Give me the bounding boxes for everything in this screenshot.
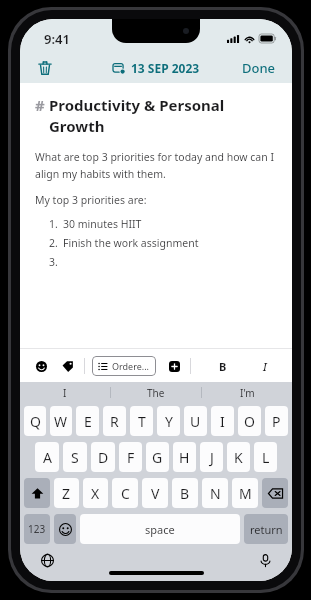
staticText: # [35, 95, 49, 115]
staticText: E [84, 412, 92, 431]
button[interactable]: H [173, 442, 196, 472]
staticText: T [138, 412, 146, 431]
button[interactable]: Backspace [262, 478, 288, 508]
button[interactable]: Dictate [254, 549, 276, 571]
button[interactable]: Q [24, 406, 46, 436]
button[interactable]: Tag [54, 353, 80, 379]
staticText: Finish the work assignment [63, 236, 199, 250]
staticText: X [91, 484, 100, 503]
button[interactable]: K [227, 442, 250, 472]
button[interactable]: I'm [202, 382, 292, 403]
staticText: return [250, 522, 283, 537]
staticText: B [219, 359, 227, 374]
staticText: 13 SEP 2023 [131, 60, 200, 76]
staticText: My top 3 priorities are: [35, 193, 147, 207]
staticText: D [98, 448, 109, 467]
staticText: space [145, 522, 175, 537]
button[interactable]: B [210, 353, 236, 379]
button[interactable]: V [142, 478, 168, 508]
staticText: O [244, 412, 255, 431]
button[interactable]: B [172, 478, 198, 508]
button[interactable]: W [50, 406, 72, 436]
button[interactable]: X [83, 478, 108, 508]
staticText: I'm [240, 386, 255, 400]
staticText: H [179, 448, 190, 467]
button[interactable]: F [119, 442, 142, 472]
staticText: M [239, 484, 252, 503]
button[interactable]: Ordere... [92, 356, 156, 376]
staticText: 1. [49, 217, 63, 231]
button[interactable]: C [112, 478, 138, 508]
button[interactable]: U [184, 406, 207, 436]
button[interactable]: return [244, 514, 288, 544]
button[interactable]: Insert [161, 353, 187, 379]
button[interactable]: O [238, 406, 261, 436]
staticText: Done [242, 59, 276, 77]
staticText: 30 minutes HIIT [63, 217, 142, 231]
staticText: I [220, 412, 225, 431]
staticText: 3. [49, 255, 63, 269]
staticText: 9:41 [44, 30, 70, 48]
staticText: I [263, 359, 267, 374]
button[interactable]: I [252, 353, 278, 379]
staticText: 2. [49, 236, 63, 250]
button[interactable]: J [200, 442, 223, 472]
button[interactable]: M [232, 478, 258, 508]
staticText: L [262, 448, 270, 467]
button[interactable]: N [202, 478, 228, 508]
button[interactable]: G [146, 442, 169, 472]
button[interactable]: 123 [24, 514, 50, 544]
button[interactable]: The [111, 382, 201, 403]
staticText: U [190, 412, 201, 431]
button[interactable]: Y [157, 406, 180, 436]
button[interactable]: Emoji [28, 353, 54, 379]
staticText: I [63, 386, 67, 400]
staticText: F [127, 448, 135, 467]
staticText: K [234, 448, 243, 467]
staticText: The [147, 386, 165, 400]
button[interactable]: Done [238, 55, 280, 81]
staticText: G [152, 448, 163, 467]
button[interactable]: 13 SEP 2023 [109, 60, 204, 76]
button[interactable]: Delete note [30, 53, 60, 83]
staticText: 123 [28, 522, 46, 536]
button[interactable]: space [80, 514, 240, 544]
button[interactable]: T [130, 406, 153, 436]
staticText: C [121, 484, 130, 503]
button[interactable]: P [265, 406, 288, 436]
button[interactable]: I [211, 406, 234, 436]
staticText: Y [165, 412, 173, 431]
button[interactable]: D [91, 442, 115, 472]
staticText: J [210, 448, 214, 467]
staticText: V [151, 484, 160, 503]
button[interactable]: S [63, 442, 87, 472]
button[interactable]: E [76, 406, 99, 436]
staticText: Ordere... [112, 360, 150, 372]
staticText: B [180, 484, 190, 503]
staticText: Z [62, 484, 71, 503]
staticText: Q [30, 412, 41, 431]
button[interactable]: L [254, 442, 277, 472]
button[interactable]: R [103, 406, 126, 436]
button[interactable]: Change keyboard [36, 549, 58, 571]
staticText: What are top 3 priorities for today and … [35, 150, 277, 181]
button[interactable]: I [20, 382, 110, 403]
staticText: N [210, 484, 221, 503]
staticText: S [71, 448, 79, 467]
button[interactable]: A [35, 442, 59, 472]
button[interactable]: Emoji keyboard [54, 514, 76, 544]
staticText: P [272, 412, 281, 431]
staticText: A [43, 448, 52, 467]
staticText: Productivity & Personal Growth [49, 95, 277, 137]
button[interactable]: Z [54, 478, 79, 508]
staticText: R [110, 412, 119, 431]
button[interactable]: Shift [24, 478, 50, 508]
staticText: W [54, 412, 68, 431]
